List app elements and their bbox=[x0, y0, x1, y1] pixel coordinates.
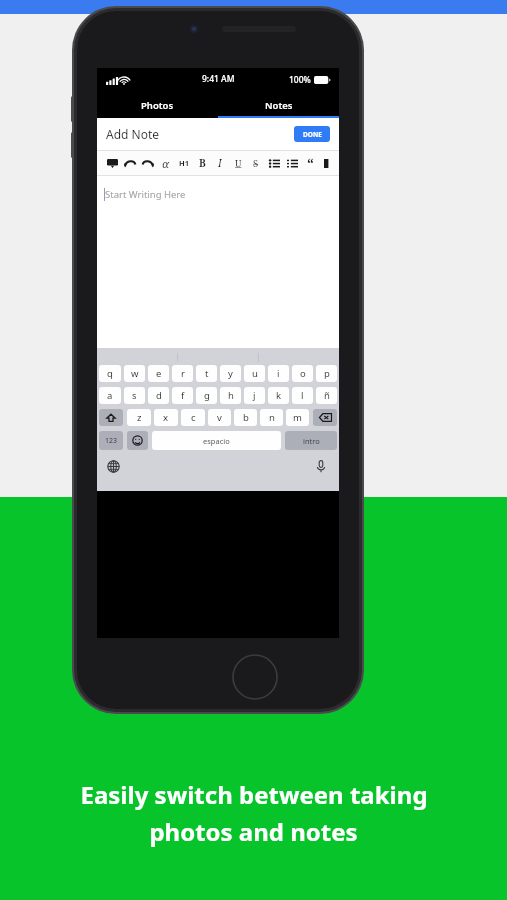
button[interactable]: keyboard bbox=[103, 151, 121, 175]
button[interactable]: b bbox=[234, 409, 257, 426]
button[interactable]: espacio bbox=[152, 431, 281, 450]
staticText: u bbox=[252, 367, 258, 380]
staticText: Start Writing Here bbox=[105, 188, 186, 201]
button[interactable]: a bbox=[99, 387, 121, 404]
button[interactable]: Change language bbox=[105, 458, 121, 474]
button[interactable]: o bbox=[292, 365, 313, 382]
button[interactable]: DONE bbox=[294, 126, 330, 142]
staticText: k bbox=[276, 389, 282, 402]
button[interactable]: i bbox=[268, 365, 289, 382]
button[interactable]: ñ bbox=[316, 387, 337, 404]
staticText: intro bbox=[303, 436, 320, 446]
staticText: Add Note bbox=[106, 126, 160, 142]
staticText: s bbox=[132, 389, 137, 402]
button[interactable]: y bbox=[220, 365, 241, 382]
button[interactable]: Notes bbox=[218, 92, 339, 118]
button[interactable]: n bbox=[260, 409, 283, 426]
button[interactable]: More bbox=[319, 151, 337, 175]
button[interactable]: f bbox=[172, 387, 193, 404]
staticText: g bbox=[204, 389, 210, 402]
staticText: a bbox=[107, 389, 113, 402]
staticText: DONE bbox=[303, 130, 322, 139]
staticText: “ bbox=[307, 154, 314, 173]
staticText: p bbox=[324, 367, 330, 380]
staticText: n bbox=[269, 411, 275, 424]
staticText: w bbox=[131, 367, 139, 380]
button[interactable]: Dictate bbox=[313, 458, 329, 474]
staticText: x bbox=[163, 411, 169, 424]
staticText: 100% bbox=[289, 74, 311, 86]
button[interactable]: s bbox=[124, 387, 145, 404]
staticText: j bbox=[253, 389, 256, 402]
staticText: I bbox=[218, 156, 222, 170]
staticText: d bbox=[156, 389, 162, 402]
button[interactable]: l bbox=[292, 387, 313, 404]
button[interactable]: Shift bbox=[99, 409, 123, 426]
staticText: m bbox=[293, 411, 302, 424]
button[interactable]: r bbox=[172, 365, 193, 382]
staticText: H1 bbox=[179, 158, 190, 168]
button[interactable]: h bbox=[220, 387, 241, 404]
staticText: b bbox=[243, 411, 249, 424]
button[interactable]: Undo bbox=[121, 151, 139, 175]
button[interactable]: w bbox=[124, 365, 145, 382]
staticText: z bbox=[137, 411, 142, 424]
staticText: e bbox=[156, 367, 162, 380]
staticText: U bbox=[235, 157, 242, 169]
staticText: v bbox=[217, 411, 222, 424]
staticText: 123 bbox=[105, 436, 118, 446]
button[interactable]: Photos bbox=[97, 92, 218, 118]
button[interactable]: Numbered list bbox=[283, 151, 301, 175]
button[interactable]: Bulleted list bbox=[265, 151, 283, 175]
staticText: α bbox=[162, 156, 170, 171]
button[interactable]: u bbox=[244, 365, 265, 382]
button[interactable]: Backspace bbox=[313, 409, 337, 426]
button[interactable]: g bbox=[196, 387, 217, 404]
staticText: o bbox=[300, 367, 306, 380]
staticText: q bbox=[107, 367, 113, 380]
button[interactable]: 123 bbox=[99, 431, 123, 450]
staticText: Easily switch between taking bbox=[80, 778, 428, 811]
button[interactable]: m bbox=[286, 409, 309, 426]
button[interactable]: Redo bbox=[139, 151, 157, 175]
staticText: y bbox=[228, 367, 233, 380]
staticText: t bbox=[205, 367, 209, 380]
button[interactable]: z bbox=[127, 409, 151, 426]
staticText: f bbox=[181, 389, 185, 402]
button[interactable]: v bbox=[208, 409, 231, 426]
button[interactable]: d bbox=[148, 387, 169, 404]
staticText: B bbox=[199, 156, 206, 170]
staticText: h bbox=[228, 389, 234, 402]
button[interactable]: intro bbox=[285, 431, 337, 450]
staticText: 9:41 AM bbox=[202, 73, 235, 85]
staticText: ñ bbox=[324, 389, 330, 402]
staticText: Notes bbox=[265, 99, 293, 112]
other: Home bbox=[232, 654, 278, 700]
staticText: photos and notes bbox=[149, 815, 358, 848]
button[interactable]: c bbox=[181, 409, 205, 426]
button[interactable]: U bbox=[229, 151, 247, 175]
staticText: S bbox=[253, 157, 259, 170]
button[interactable]: Emoji bbox=[127, 431, 148, 450]
button[interactable]: q bbox=[99, 365, 121, 382]
button[interactable]: B bbox=[193, 151, 211, 175]
staticText: Photos bbox=[141, 99, 174, 112]
button[interactable]: j bbox=[244, 387, 265, 404]
button[interactable]: x bbox=[154, 409, 178, 426]
button[interactable]: S bbox=[247, 151, 265, 175]
staticText: i bbox=[277, 367, 280, 380]
staticText: espacio bbox=[203, 436, 230, 446]
staticText: l bbox=[301, 389, 304, 402]
button[interactable]: k bbox=[268, 387, 289, 404]
button[interactable]: I bbox=[211, 151, 229, 175]
button[interactable]: t bbox=[196, 365, 217, 382]
button[interactable]: “ bbox=[301, 151, 319, 175]
button[interactable]: p bbox=[316, 365, 337, 382]
button[interactable]: e bbox=[148, 365, 169, 382]
button[interactable]: H1 bbox=[175, 151, 193, 175]
staticText: c bbox=[191, 411, 196, 424]
staticText: r bbox=[181, 367, 185, 380]
button[interactable]: α bbox=[157, 151, 175, 175]
